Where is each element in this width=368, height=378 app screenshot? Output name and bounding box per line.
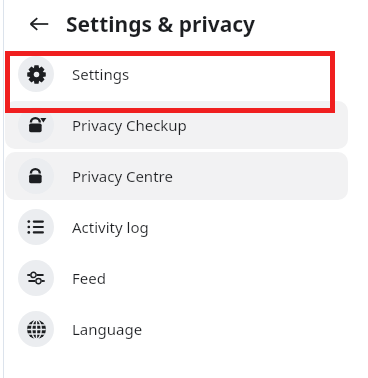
staticText: Feed — [72, 268, 106, 288]
staticText: Settings — [72, 64, 130, 84]
button[interactable]: Settings — [5, 50, 348, 98]
staticText: Privacy Checkup — [72, 115, 187, 135]
button[interactable]: Back — [26, 11, 52, 37]
staticText: Language — [72, 319, 143, 339]
staticText: Privacy Centre — [72, 166, 173, 186]
button[interactable]: Privacy Checkup — [5, 101, 348, 149]
button[interactable]: Language — [5, 305, 348, 353]
staticText: Settings & privacy — [66, 10, 256, 39]
button[interactable]: Feed — [5, 254, 348, 302]
button[interactable]: Activity log — [5, 203, 348, 251]
staticText: Activity log — [72, 217, 149, 237]
button[interactable]: Privacy Centre — [5, 152, 348, 200]
